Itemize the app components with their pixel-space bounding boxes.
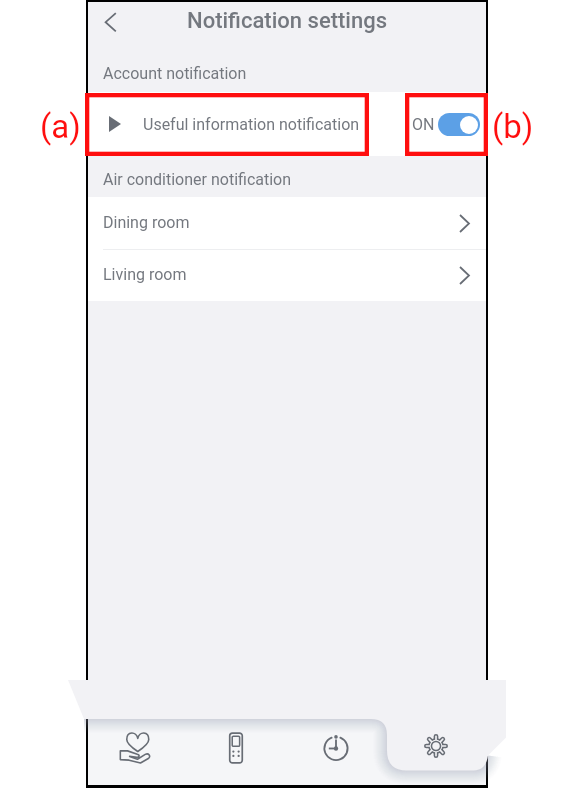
staticText: Living room [103, 265, 187, 284]
staticText: Useful information notification [143, 115, 360, 134]
staticText: (b) [492, 107, 534, 146]
button[interactable]: Home [120, 732, 152, 764]
staticText: (a) [40, 107, 81, 146]
button[interactable]: Back [93, 4, 129, 40]
button[interactable]: Schedule [320, 732, 352, 764]
staticText: Account notification [103, 64, 247, 83]
button[interactable]: Living room [88, 249, 486, 301]
staticText: ON [412, 115, 435, 134]
staticText: Air conditioner notification [103, 170, 292, 189]
button[interactable]: Dining room [88, 197, 486, 249]
staticText: Notification settings [187, 8, 388, 34]
button[interactable]: Remote control [220, 732, 252, 764]
button[interactable]: Useful information notification toggle [438, 113, 480, 136]
staticText: Dining room [103, 213, 190, 232]
button[interactable]: Settings [387, 702, 486, 772]
button[interactable]: Useful information notification [88, 92, 486, 156]
